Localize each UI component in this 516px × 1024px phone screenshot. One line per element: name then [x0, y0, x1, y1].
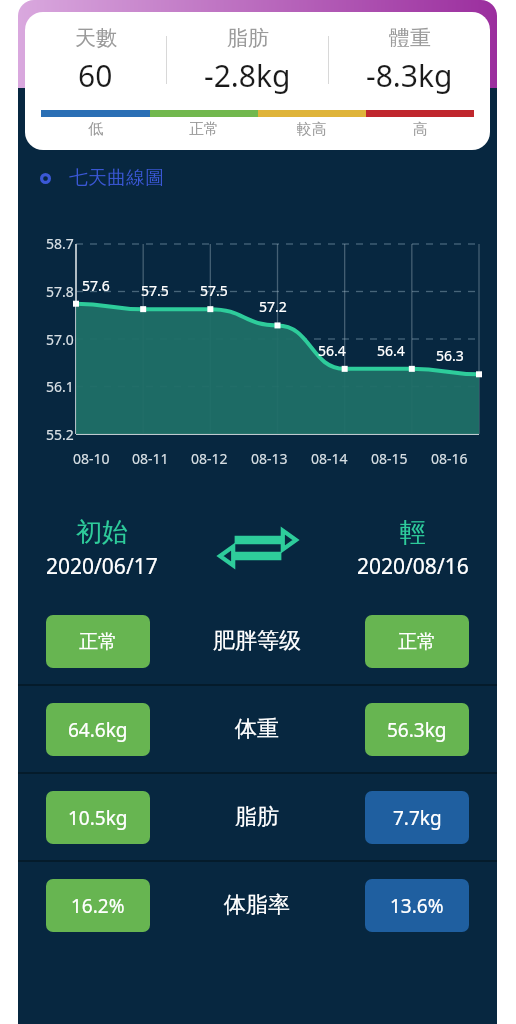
staticText: 60 [78, 55, 113, 96]
staticText: 肥胖等级 [213, 627, 301, 655]
staticText: 08-16 [431, 449, 468, 468]
button[interactable]: 體重 [329, 25, 490, 96]
button[interactable]: 64.6kg [18, 686, 497, 772]
staticText: 体重 [235, 715, 279, 743]
staticText: 08-15 [371, 449, 408, 468]
staticText: 08-13 [251, 449, 288, 468]
button[interactable]: 脂肪 [167, 25, 328, 96]
staticText: 08-11 [132, 449, 169, 468]
button[interactable]: 10.5kg [18, 774, 497, 860]
staticText: 56.4 [377, 341, 405, 360]
staticText: 正常 [189, 120, 219, 139]
staticText: 56.3kg [387, 717, 447, 743]
staticText: 57.5 [141, 281, 169, 300]
staticText: 64.6kg [68, 717, 128, 743]
staticText: 57.8 [46, 282, 74, 301]
staticText: 7.7kg [393, 805, 442, 831]
staticText: 体脂率 [224, 891, 290, 919]
staticText: 13.6% [390, 893, 444, 919]
staticText: 55.2 [46, 425, 74, 444]
staticText: 較高 [297, 120, 327, 139]
staticText: 體重 [389, 25, 431, 51]
staticText: 正常 [398, 630, 436, 654]
button[interactable]: 天數 [25, 25, 166, 96]
button[interactable]: Swap comparison [186, 516, 329, 580]
staticText: 57.6 [82, 276, 110, 295]
staticText: 16.2% [71, 893, 125, 919]
staticText: 七天曲線圖 [69, 166, 164, 190]
staticText: 2020/08/16 [357, 552, 469, 581]
staticText: 天數 [75, 25, 117, 51]
button[interactable]: 七天曲線圖 [18, 162, 497, 194]
button[interactable]: 16.2% [18, 862, 497, 948]
staticText: 正常 [79, 630, 117, 654]
staticText: 初始 [76, 516, 128, 549]
staticText: 08-12 [191, 449, 228, 468]
staticText: 57.0 [46, 330, 74, 349]
staticText: 56.1 [46, 377, 74, 396]
staticText: 08-10 [73, 449, 110, 468]
staticText: 08-14 [311, 449, 348, 468]
staticText: 57.5 [200, 281, 228, 300]
staticText: 脂肪 [235, 803, 279, 831]
staticText: 10.5kg [68, 805, 128, 831]
staticText: -2.8kg [204, 55, 291, 96]
button[interactable]: 正常 [18, 598, 497, 684]
staticText: 2020/06/17 [46, 552, 158, 581]
staticText: 低 [88, 120, 103, 139]
staticText: 56.3 [436, 346, 464, 365]
staticText: -8.3kg [366, 55, 453, 96]
staticText: 57.2 [259, 297, 287, 316]
staticText: 輕 [400, 516, 426, 549]
staticText: 脂肪 [227, 25, 269, 51]
staticText: 高 [413, 120, 428, 139]
staticText: 56.4 [318, 341, 346, 360]
staticText: 58.7 [46, 234, 74, 253]
